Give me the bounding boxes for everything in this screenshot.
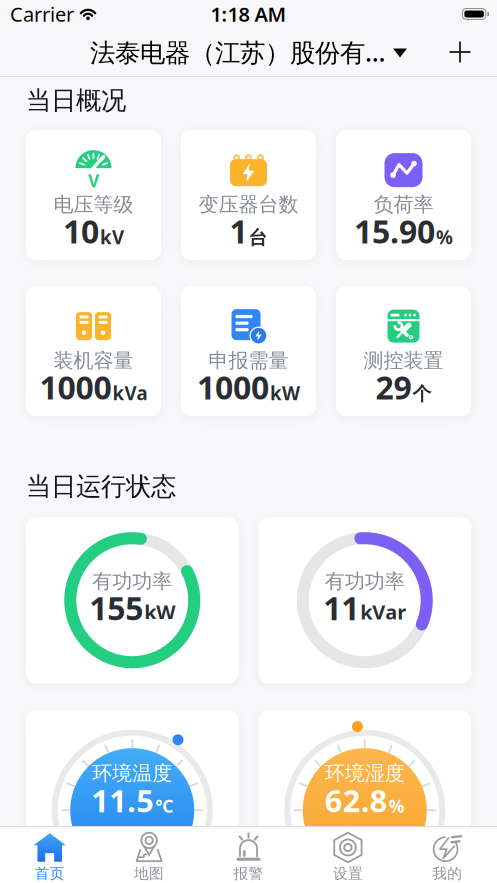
staticText: 有功功率: [92, 569, 172, 593]
staticText: 地图: [134, 864, 164, 882]
staticText: kV: [100, 225, 124, 249]
staticText: kVar: [360, 598, 406, 625]
staticText: 装机容量: [53, 348, 133, 373]
button[interactable]: 变压器台数: [181, 130, 316, 260]
staticText: 当日概况: [26, 85, 126, 116]
staticText: 测控装置: [363, 348, 443, 373]
staticText: 申报需量: [208, 348, 288, 373]
button[interactable]: 首页: [0, 827, 99, 882]
staticText: 电压等级: [53, 192, 133, 217]
staticText: 1000: [39, 366, 111, 408]
staticText: 1000: [197, 366, 269, 408]
staticText: 1: [229, 210, 247, 252]
button[interactable]: V: [26, 130, 161, 260]
button[interactable]: 测控装置: [336, 286, 471, 416]
staticText: 有功功率: [325, 569, 405, 593]
staticText: 个: [412, 382, 431, 405]
staticText: 11.5: [91, 780, 154, 821]
staticText: Carrier: [10, 1, 74, 27]
button[interactable]: Add: [449, 41, 497, 63]
staticText: 11: [323, 586, 359, 629]
staticText: 15.90: [354, 210, 435, 252]
button[interactable]: 设置: [298, 827, 398, 882]
staticText: 变压器台数: [198, 192, 298, 217]
staticText: V: [88, 169, 99, 192]
button[interactable]: 法泰电器（江苏）股份有…: [90, 35, 407, 69]
button[interactable]: 负荷率: [336, 130, 471, 260]
staticText: %: [389, 795, 405, 818]
staticText: 法泰电器（江苏）股份有…: [90, 35, 386, 69]
button[interactable]: 环境温度: [26, 710, 238, 876]
button[interactable]: 环境湿度: [258, 710, 471, 876]
button[interactable]: 报警: [199, 827, 298, 882]
staticText: 首页: [35, 864, 65, 882]
button[interactable]: 有功功率: [258, 517, 471, 683]
button[interactable]: 地图: [99, 827, 199, 882]
staticText: %: [436, 225, 453, 249]
staticText: 1:18 AM: [210, 1, 286, 27]
staticText: 10: [63, 210, 99, 252]
staticText: 环境湿度: [325, 761, 405, 785]
button[interactable]: 我的: [398, 827, 497, 882]
staticText: 报警: [233, 864, 263, 882]
staticText: °C: [155, 795, 173, 818]
staticText: 29: [375, 366, 411, 408]
staticText: 环境温度: [92, 761, 172, 785]
staticText: 当日运行状态: [26, 471, 176, 502]
staticText: 我的: [432, 864, 462, 882]
staticText: kVa: [112, 381, 147, 405]
button[interactable]: 申报需量: [181, 286, 316, 416]
button[interactable]: 有功功率: [26, 517, 238, 683]
staticText: 62.8: [325, 780, 388, 821]
staticText: 台: [248, 226, 267, 249]
staticText: 设置: [333, 864, 363, 882]
staticText: 负荷率: [373, 192, 433, 217]
staticText: kW: [270, 381, 300, 405]
staticText: 155: [89, 586, 143, 629]
button[interactable]: 装机容量: [26, 286, 161, 416]
staticText: kW: [144, 598, 175, 625]
